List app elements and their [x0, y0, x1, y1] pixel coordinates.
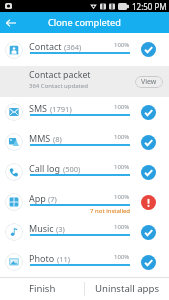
staticText: Call log	[29, 162, 61, 174]
staticText: (8)	[53, 134, 62, 144]
staticText: View	[141, 77, 157, 87]
staticText: 100%	[114, 223, 130, 231]
button[interactable]: Uninstall apps	[85, 278, 169, 300]
staticText: Uninstall apps	[95, 282, 160, 295]
staticText: (1791)	[50, 104, 72, 114]
staticText: 7 not installed	[90, 207, 130, 215]
button[interactable]: View	[135, 76, 163, 88]
button[interactable]: Contact	[0, 33, 169, 66]
staticText: 100%	[114, 103, 130, 111]
staticText: (3)	[56, 224, 65, 234]
staticText: Photo	[29, 252, 55, 264]
staticText: 100%	[114, 133, 130, 141]
staticText: Contact	[29, 40, 62, 52]
staticText: 364 Contact updated	[29, 82, 88, 90]
staticText: 100%	[114, 163, 130, 171]
staticText: 100%	[114, 41, 130, 49]
staticText: (11)	[57, 254, 71, 264]
staticText: (7)	[48, 194, 57, 204]
button[interactable]: Finish	[0, 278, 84, 300]
button[interactable]: App	[0, 187, 169, 217]
button[interactable]: SMS	[0, 97, 169, 127]
button[interactable]: Photo	[0, 247, 169, 277]
staticText: App	[29, 192, 46, 204]
staticText: SMS	[29, 102, 48, 114]
staticText: (364)	[64, 42, 82, 52]
button[interactable]: Back	[3, 15, 19, 31]
button[interactable]: Call log	[0, 157, 169, 187]
staticText: Finish	[29, 282, 56, 295]
button[interactable]: MMS	[0, 127, 169, 157]
staticText: 12:50 PM	[132, 1, 167, 12]
staticText: (500)	[63, 164, 81, 174]
staticText: 100%	[114, 193, 130, 201]
staticText: 100%	[114, 253, 130, 261]
staticText: Contact packet	[29, 69, 91, 81]
staticText: Clone completed	[48, 16, 121, 29]
button[interactable]: Music	[0, 217, 169, 247]
staticText: Music	[29, 222, 54, 234]
staticText: MMS	[29, 132, 51, 144]
